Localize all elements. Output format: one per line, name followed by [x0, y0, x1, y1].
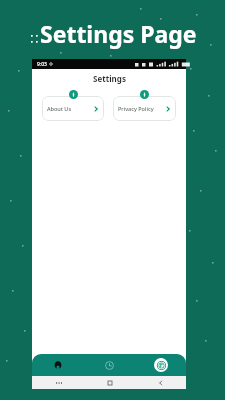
button[interactable]: About Us — [42, 96, 104, 121]
staticText: Settings — [93, 73, 126, 84]
button[interactable]: Privacy Policy — [113, 96, 176, 121]
button[interactable]: Profile — [135, 354, 186, 376]
staticText: About Us — [47, 105, 72, 112]
staticText: 9:03 — [37, 61, 47, 68]
staticText: Settings Page — [40, 18, 197, 49]
button[interactable]: Home — [32, 354, 84, 376]
staticText: Privacy Policy — [118, 105, 154, 112]
button[interactable]: History — [84, 354, 135, 376]
